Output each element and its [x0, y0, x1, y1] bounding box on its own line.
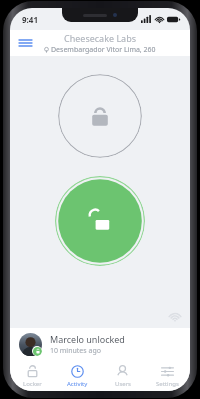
- staticText: Activity: [67, 380, 88, 387]
- button[interactable]: Activity: [55, 361, 100, 391]
- button[interactable]: Locker: [10, 361, 55, 391]
- staticText: Users: [115, 380, 131, 387]
- button[interactable]: Open menu: [10, 32, 41, 54]
- button[interactable]: Lock: [58, 74, 142, 158]
- staticText: Desembargador Vitor Lima, 260: [51, 45, 156, 55]
- button[interactable]: Marcelo unlocked: [10, 328, 190, 361]
- staticText: 9:41: [22, 14, 38, 25]
- staticText: Cheesecake Labs: [64, 32, 136, 44]
- staticText: 10 minutes ago: [50, 346, 101, 356]
- staticText: Marcelo unlocked: [50, 333, 125, 345]
- button[interactable]: Settings: [145, 361, 190, 391]
- button[interactable]: Unlock door: [55, 176, 145, 266]
- staticText: Settings: [156, 380, 179, 387]
- button[interactable]: Users: [100, 361, 145, 391]
- staticText: Locker: [23, 380, 42, 387]
